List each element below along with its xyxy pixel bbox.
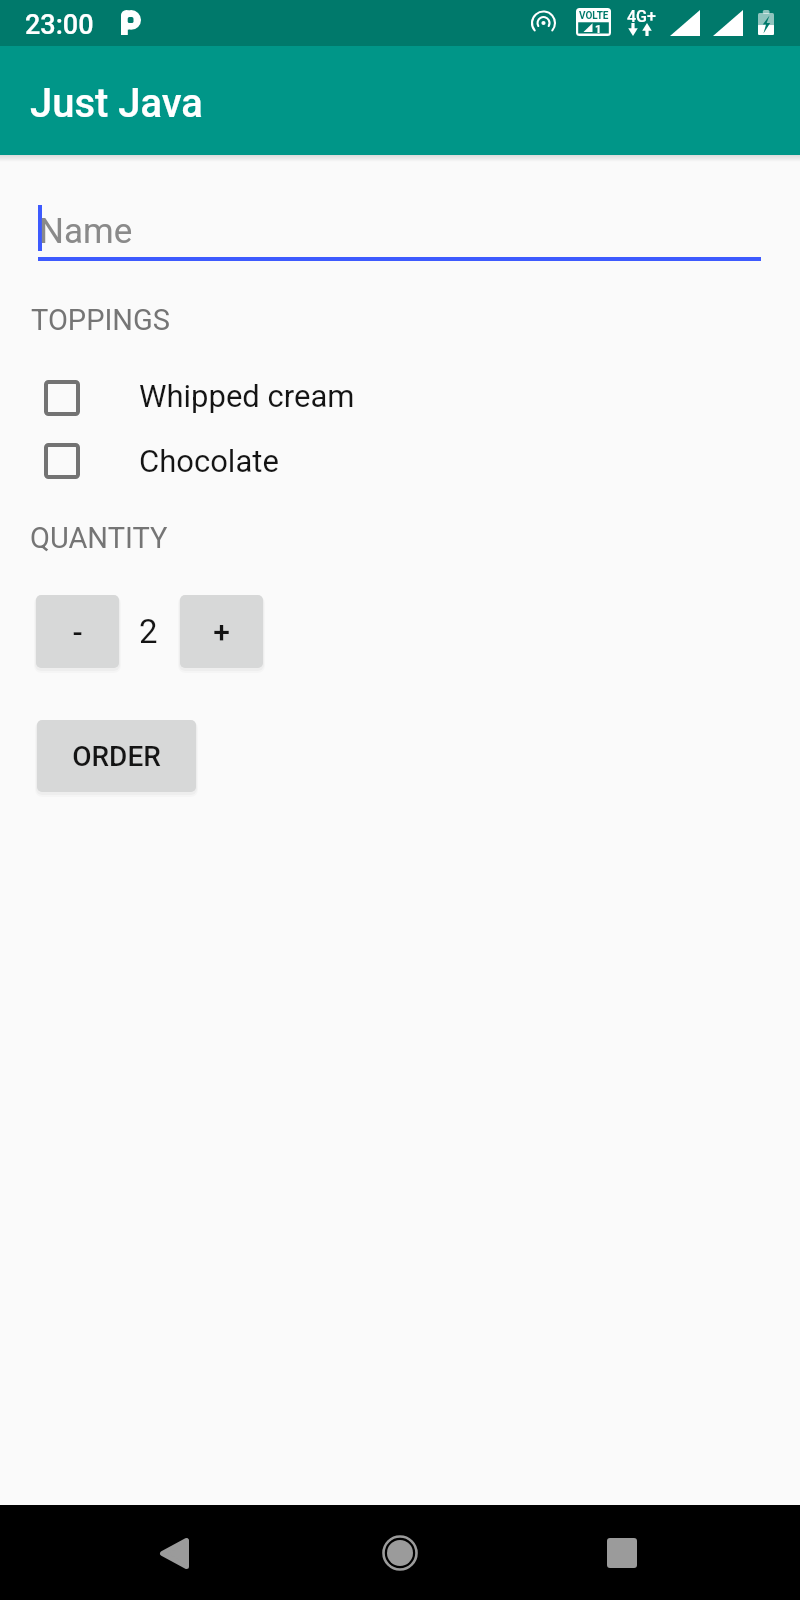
staticText: Chocolate [139,443,279,479]
button[interactable]: - [36,595,119,668]
staticText: 2 [139,612,158,651]
staticText: 23:00 [25,9,94,41]
button[interactable]: Whipped cream [0,369,800,427]
button[interactable]: + [180,595,263,668]
staticText: Just Java [30,80,203,127]
staticText: QUANTITY [30,521,168,555]
button[interactable]: Back [134,1513,214,1593]
staticText: ORDER [72,740,161,773]
staticText: Whipped cream [139,378,355,414]
button[interactable]: Chocolate [0,432,800,490]
staticText: - [72,615,83,650]
staticText: VOLTE [579,10,609,22]
staticText: 1 [595,23,602,36]
staticText: + [213,614,230,649]
staticText: Name [39,211,133,252]
button[interactable]: ORDER [37,720,196,792]
staticText: 4G+ [627,7,656,26]
button[interactable]: Name input field [32,190,767,262]
staticText: TOPPINGS [31,303,170,337]
button[interactable]: Home [360,1513,440,1593]
button[interactable]: Recent apps [582,1513,662,1593]
